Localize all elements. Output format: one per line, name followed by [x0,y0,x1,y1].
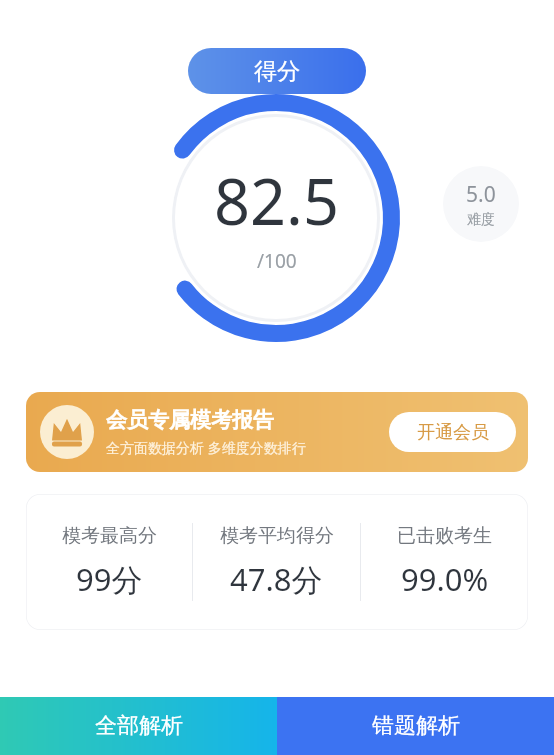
staticText: 难度 [467,211,495,229]
staticText: 模考最高分 [62,524,157,548]
button[interactable]: 错题解析 [277,697,554,755]
button[interactable]: 得分 [188,48,366,94]
button[interactable]: 5.0 [443,166,519,242]
staticText: 开通会员 [417,421,489,444]
staticText: 错题解析 [372,712,460,740]
button[interactable]: 模考最高分 [26,524,192,600]
button[interactable]: 会员专属模考报告 [26,392,528,472]
button[interactable]: 全部解析 [0,697,277,755]
staticText: 47.8分 [230,558,323,600]
staticText: 全部解析 [95,712,183,740]
staticText: 5.0 [466,180,496,209]
button[interactable]: 模考平均得分 [193,524,360,600]
button[interactable]: 已击败考生 [361,524,528,600]
staticText: 全方面数据分析 多维度分数排行 [106,438,306,457]
staticText: 99分 [76,558,143,600]
button[interactable]: 开通会员 [389,412,516,452]
staticText: 99.0% [401,558,489,600]
staticText: 82.5 [214,158,339,244]
staticText: 已击败考生 [397,524,492,548]
staticText: 得分 [254,57,300,86]
staticText: /100 [257,248,297,274]
staticText: 模考平均得分 [220,524,334,548]
staticText: 会员专属模考报告 [106,407,274,433]
